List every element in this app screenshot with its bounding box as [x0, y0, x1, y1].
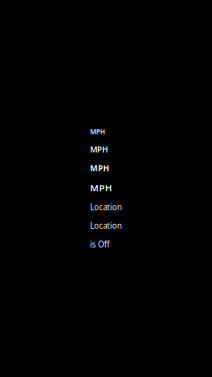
staticText: MPH: [90, 144, 108, 155]
staticText: Location: [90, 202, 122, 212]
staticText: MPH: [90, 163, 109, 173]
staticText: MPH: [90, 127, 105, 136]
staticText: is Off: [90, 239, 110, 250]
staticText: Location: [90, 220, 122, 231]
staticText: MPH: [90, 181, 112, 194]
